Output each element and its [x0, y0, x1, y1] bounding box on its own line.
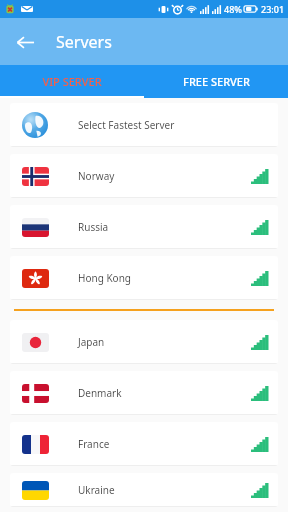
- button[interactable]: VIP SERVER: [0, 65, 144, 98]
- staticText: Norway: [78, 169, 115, 183]
- button[interactable]: Ukraine: [10, 473, 278, 507]
- button[interactable]: Hong Kong: [10, 256, 278, 300]
- staticText: FREE SERVER: [183, 74, 250, 89]
- staticText: 23:01: [261, 3, 285, 15]
- staticText: Select Fastest Server: [78, 118, 175, 132]
- button[interactable]: Russia: [10, 205, 278, 249]
- button[interactable]: Denmark: [10, 371, 278, 415]
- staticText: 48%: [224, 3, 242, 15]
- staticText: Japan: [78, 335, 105, 349]
- button[interactable]: Norway: [10, 154, 278, 198]
- staticText: VIP SERVER: [42, 74, 102, 89]
- staticText: Russia: [78, 220, 109, 234]
- staticText: Denmark: [78, 386, 122, 400]
- staticText: Hong Kong: [78, 271, 131, 285]
- button[interactable]: France: [10, 422, 278, 466]
- staticText: Servers: [56, 31, 112, 53]
- staticText: Ukraine: [78, 483, 115, 497]
- staticText: France: [78, 437, 110, 451]
- button[interactable]: Select Fastest Server: [10, 103, 278, 147]
- button[interactable]: Back: [8, 25, 42, 59]
- button[interactable]: FREE SERVER: [144, 65, 288, 98]
- button[interactable]: Japan: [10, 320, 278, 364]
